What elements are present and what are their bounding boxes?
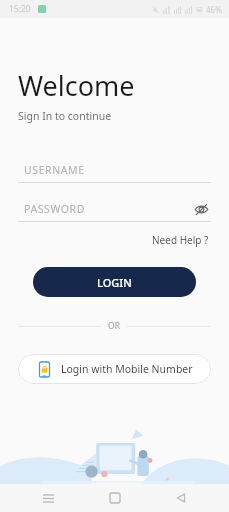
staticText: Need Help ? xyxy=(152,233,209,247)
staticText: USERNAME xyxy=(24,163,85,177)
button[interactable]: Need Help ? xyxy=(150,231,211,249)
button[interactable]: Recents xyxy=(29,484,67,512)
button[interactable]: PASSWORD xyxy=(18,197,211,221)
button[interactable]: Show password xyxy=(191,199,211,219)
staticText: Login with Mobile Number xyxy=(61,362,193,376)
button[interactable]: Login with Mobile Number xyxy=(18,354,211,384)
staticText: 15:20 xyxy=(9,3,31,15)
staticText: OR xyxy=(108,320,120,332)
staticText: PASSWORD xyxy=(24,202,85,216)
button[interactable]: USERNAME xyxy=(18,158,211,182)
staticText: Welcome xyxy=(18,67,135,104)
button[interactable]: Home xyxy=(96,484,134,512)
staticText: 46% xyxy=(206,4,222,15)
button[interactable]: Back xyxy=(162,484,200,512)
button[interactable]: LOGIN xyxy=(33,267,196,297)
staticText: LOGIN xyxy=(97,275,132,290)
staticText: Sign In to continue xyxy=(18,109,112,123)
